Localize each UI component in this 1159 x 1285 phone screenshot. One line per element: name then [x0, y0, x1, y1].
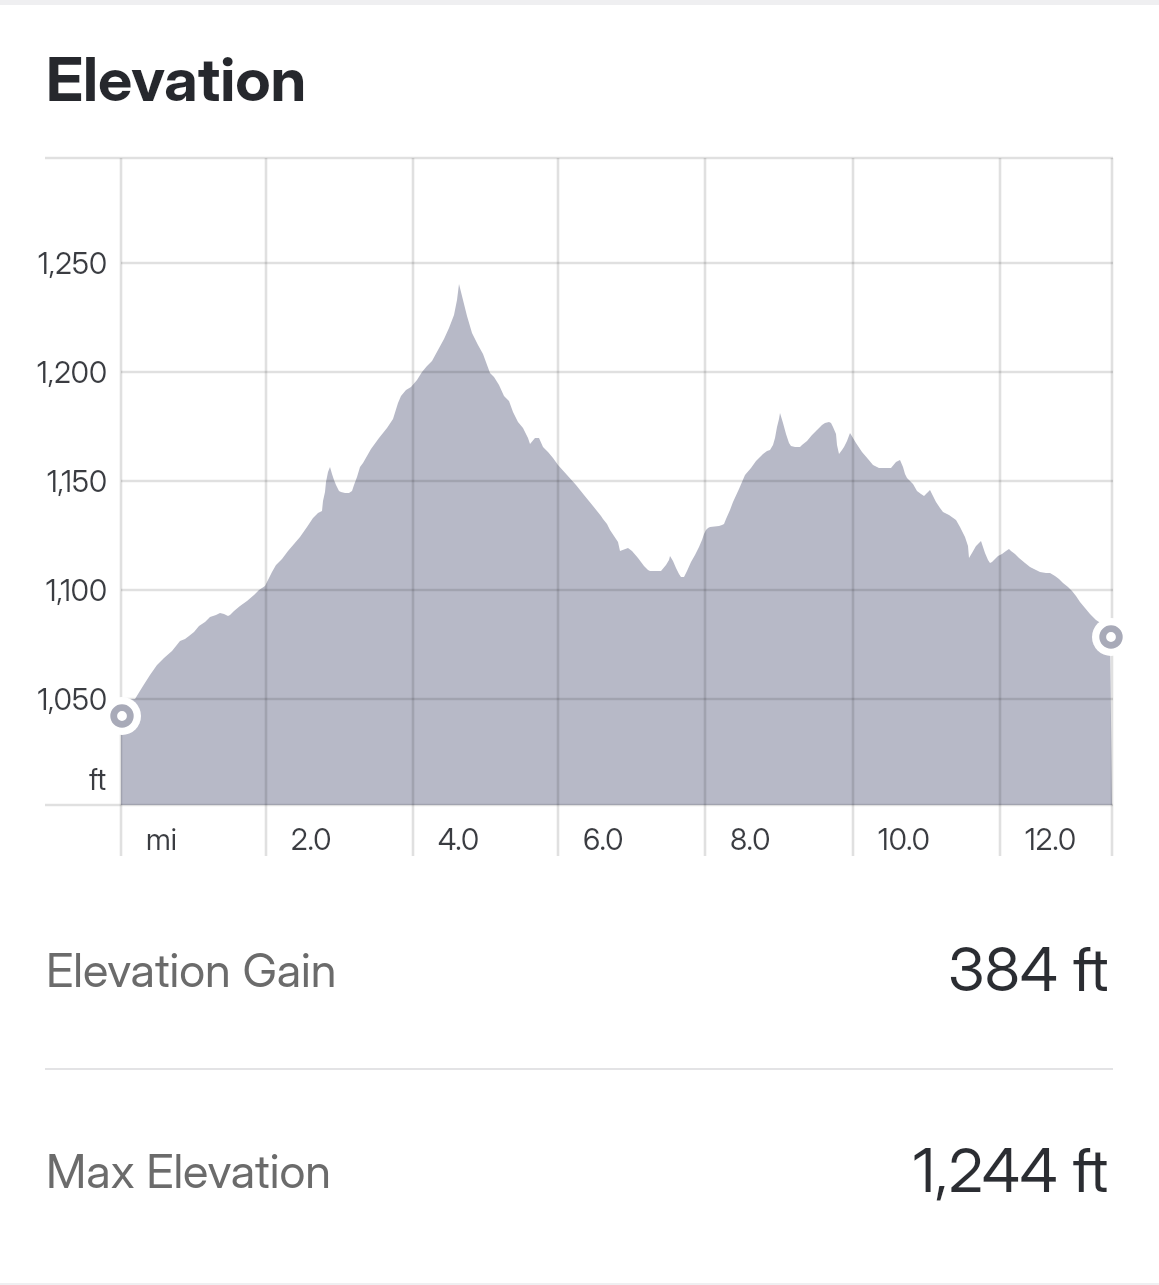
staticText: 2.0: [291, 821, 332, 857]
staticText: 1,200: [36, 354, 107, 390]
staticText: ft: [89, 761, 107, 797]
staticText: 1,100: [45, 572, 107, 608]
staticText: Max Elevation: [46, 1142, 331, 1199]
staticText: 1,250: [38, 245, 107, 281]
staticText: mi: [146, 821, 177, 857]
button[interactable]: Max Elevation: [0, 1070, 1159, 1270]
staticText: 4.0: [438, 821, 480, 857]
staticText: 8.0: [730, 821, 771, 857]
staticText: 1,050: [37, 681, 107, 717]
staticText: 1,150: [46, 463, 107, 499]
staticText: 10.0: [878, 821, 930, 857]
staticText: Elevation Gain: [46, 941, 337, 998]
staticText: Elevation: [46, 42, 307, 116]
button[interactable]: Elevation profile chart: [45, 150, 1113, 860]
staticText: 1,244 ft: [913, 1133, 1109, 1207]
button[interactable]: Elevation Gain: [0, 870, 1159, 1068]
staticText: 12.0: [1025, 821, 1077, 857]
staticText: 6.0: [583, 821, 624, 857]
staticText: 384 ft: [948, 932, 1109, 1006]
